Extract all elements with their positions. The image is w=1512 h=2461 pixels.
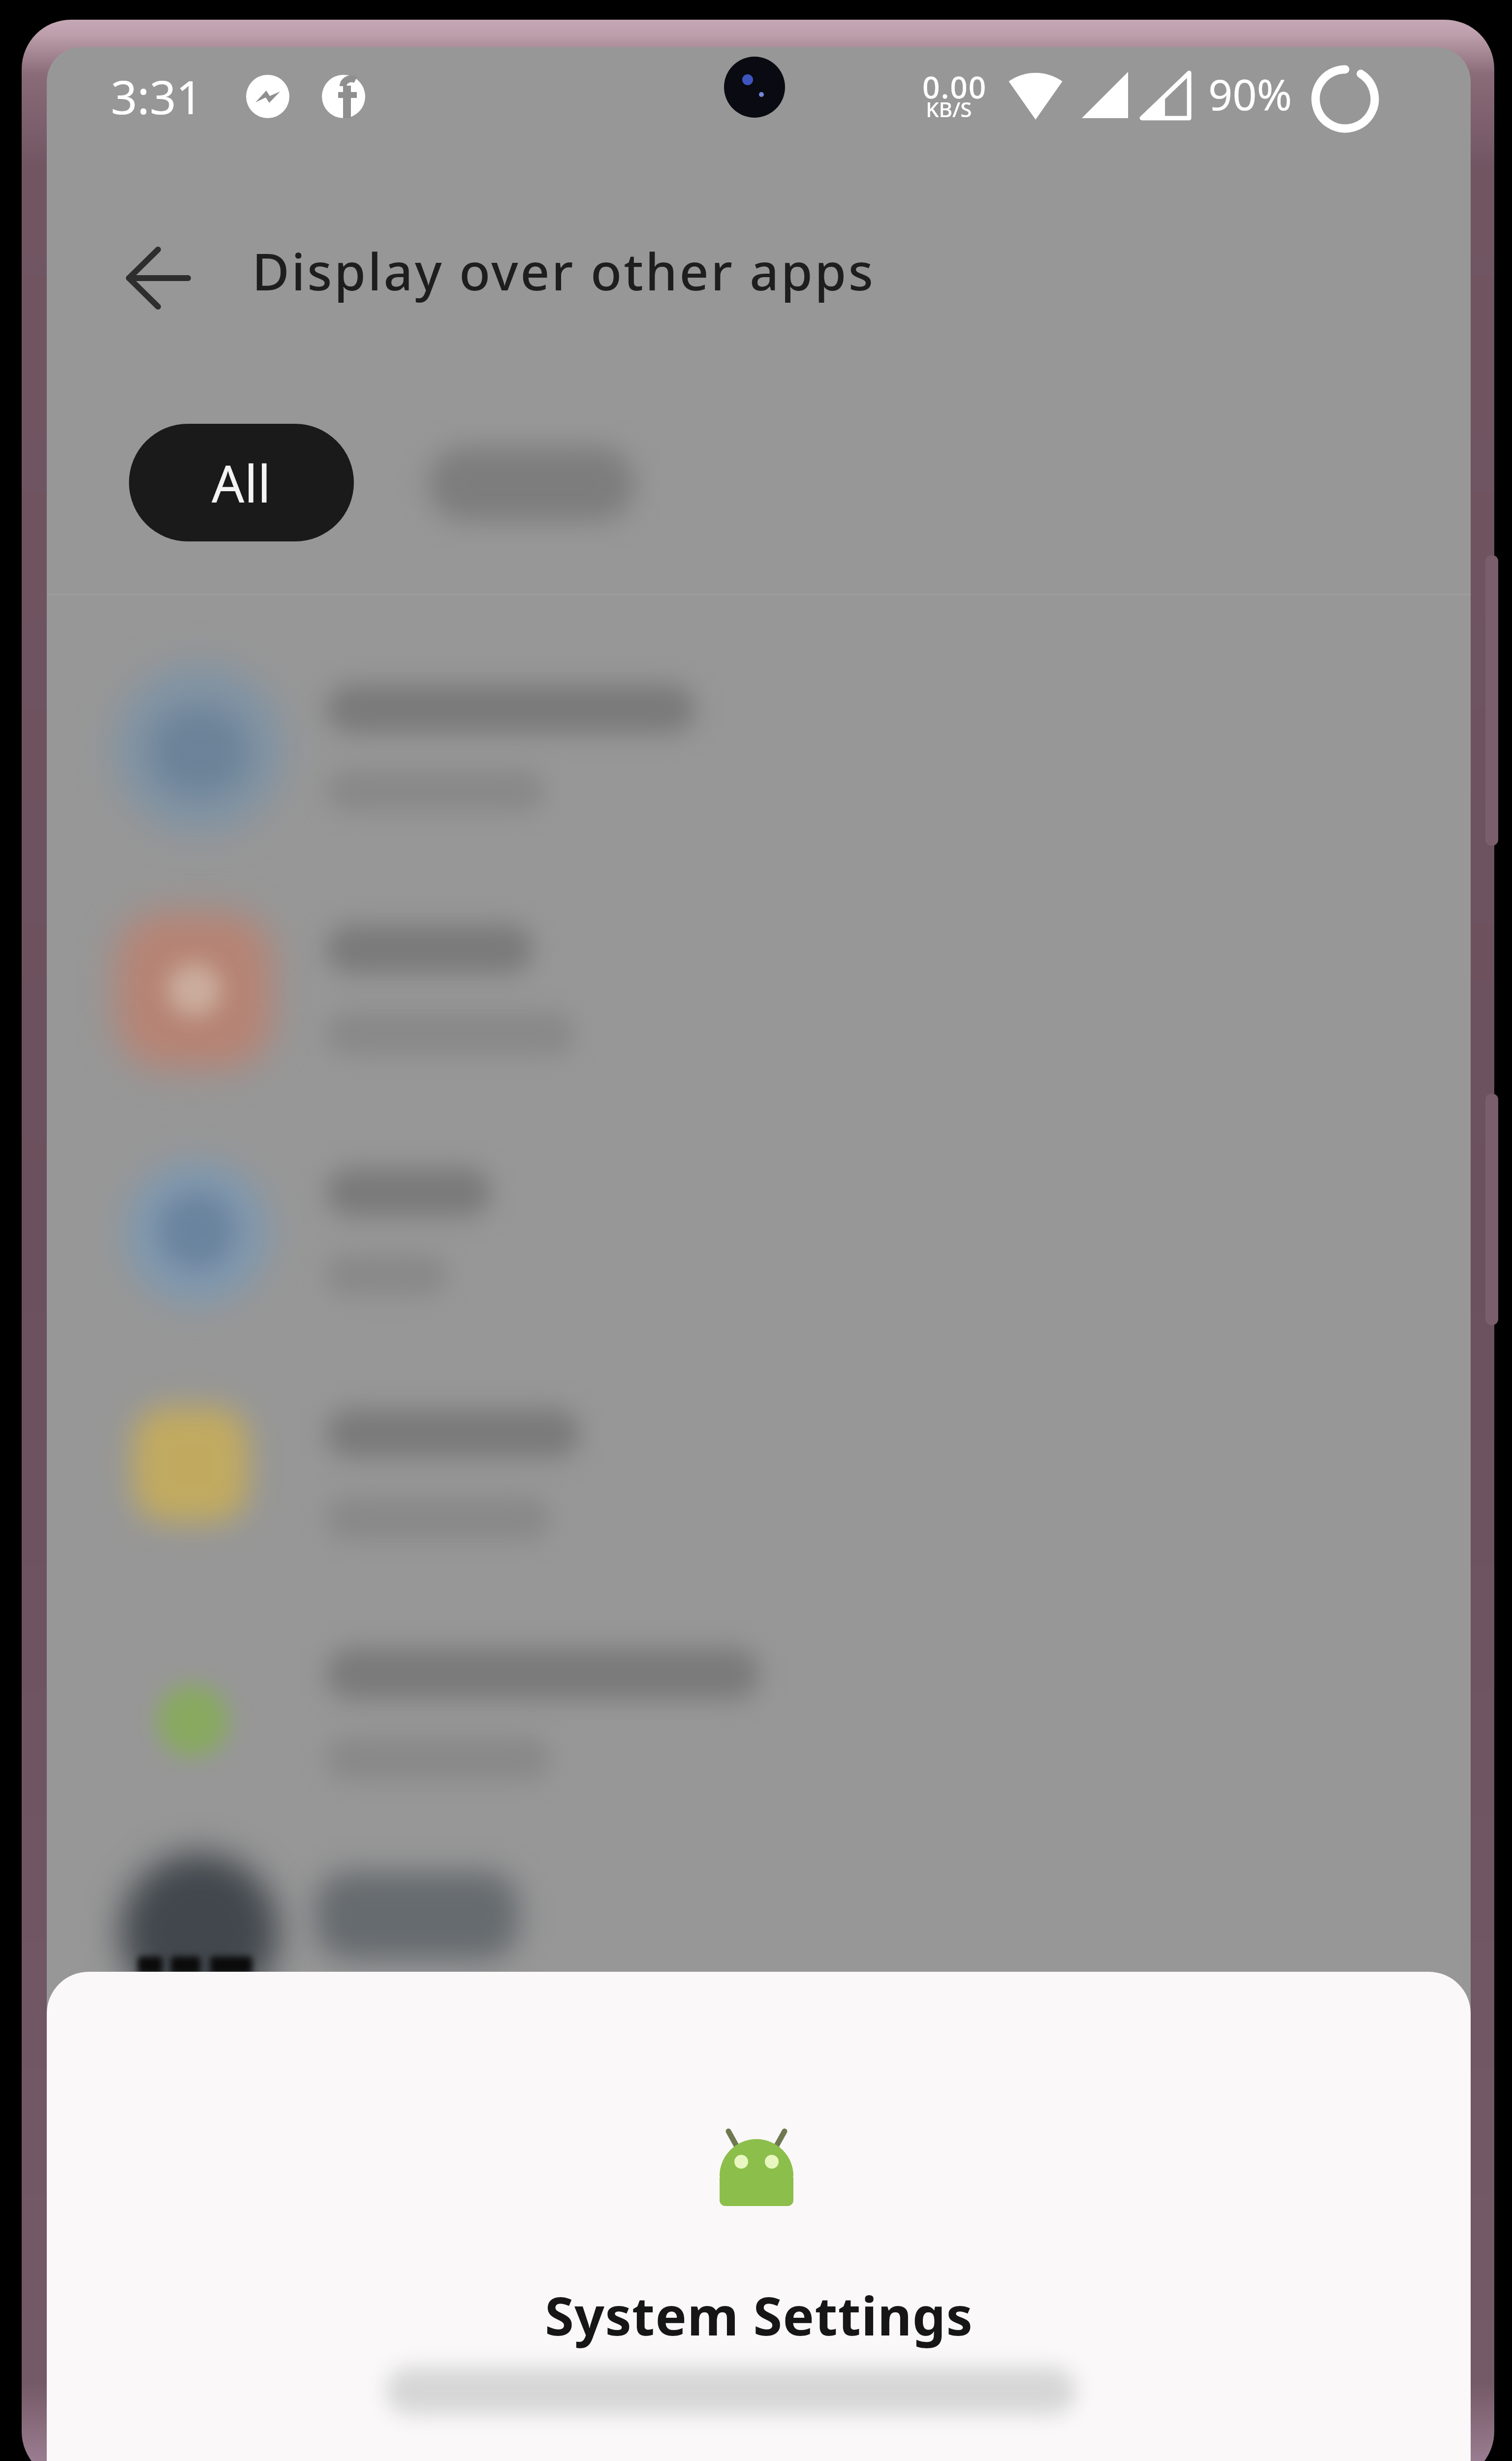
button[interactable] <box>106 242 214 316</box>
button[interactable]: All <box>129 424 354 541</box>
staticText: KB/S <box>926 95 972 123</box>
button[interactable] <box>76 1407 1440 1545</box>
button[interactable] <box>76 1648 1440 1791</box>
button[interactable] <box>76 1159 1440 1307</box>
button[interactable] <box>76 912 1440 1069</box>
staticText: All <box>212 448 271 518</box>
staticText: 90% <box>1208 65 1292 123</box>
button[interactable] <box>76 665 1440 833</box>
staticText: 3:31 <box>111 65 203 128</box>
staticText: Display over other apps <box>252 236 875 306</box>
staticText: System Settings <box>545 2279 973 2348</box>
button[interactable] <box>428 447 635 521</box>
staticText: 0.00 <box>922 66 987 107</box>
